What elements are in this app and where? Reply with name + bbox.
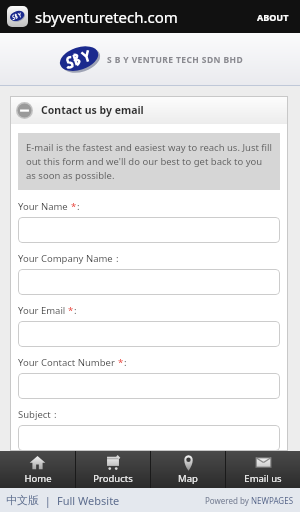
- staticText: Powered by: [205, 495, 251, 506]
- button[interactable]: [18, 425, 280, 451]
- button[interactable]: [18, 321, 280, 347]
- button[interactable]: Map: [151, 451, 225, 488]
- button[interactable]: [18, 217, 280, 243]
- button[interactable]: [18, 269, 280, 295]
- staticText: *: [68, 304, 74, 317]
- staticText: Home: [24, 472, 52, 485]
- staticText: :: [116, 252, 119, 265]
- button[interactable]: ABOUT: [253, 7, 293, 27]
- staticText: sbyventuretech.com: [35, 7, 178, 27]
- button[interactable]: Full Website: [57, 493, 120, 508]
- staticText: :: [124, 356, 127, 369]
- staticText: S B Y VENTURE TECH SDN BHD: [107, 54, 243, 66]
- staticText: ABOUT: [257, 11, 289, 23]
- staticText: *: [118, 356, 124, 369]
- staticText: Map: [178, 472, 198, 485]
- staticText: :: [74, 304, 77, 317]
- staticText: Contact us by email: [41, 103, 144, 117]
- staticText: Your Name: [18, 200, 71, 213]
- staticText: Subject: [18, 408, 54, 421]
- staticText: Your Company Name: [18, 252, 116, 265]
- staticText: 中文版: [6, 493, 39, 507]
- staticText: :: [77, 200, 80, 213]
- staticText: Email us: [244, 472, 282, 485]
- staticText: Your Email: [18, 304, 68, 317]
- button[interactable]: App icon: [7, 6, 28, 27]
- button[interactable]: Contact us by email: [10, 96, 288, 124]
- staticText: |: [39, 493, 57, 508]
- staticText: NEWPAGES: [251, 495, 294, 506]
- staticText: Products: [93, 472, 133, 485]
- button[interactable]: 中文版: [6, 493, 39, 507]
- staticText: *: [71, 200, 77, 213]
- staticText: Full Website: [57, 493, 120, 508]
- button[interactable]: Home: [0, 451, 75, 488]
- staticText: E-mail is the fastest and easiest way to…: [26, 141, 272, 182]
- button[interactable]: Products: [76, 451, 150, 488]
- staticText: :: [54, 408, 57, 421]
- button[interactable]: Email us: [226, 451, 300, 488]
- button[interactable]: [18, 373, 280, 399]
- staticText: Your Contact Number: [18, 356, 118, 369]
